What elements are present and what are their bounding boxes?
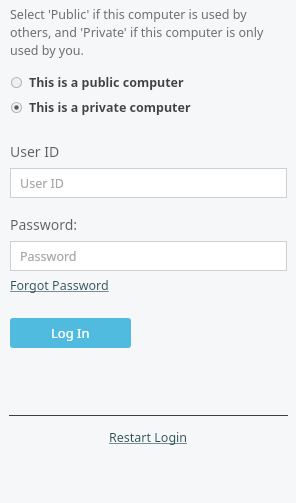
staticText: Select 'Public' if this computer is used… <box>10 6 288 59</box>
button[interactable]: Restart Login <box>109 429 188 446</box>
button[interactable]: User ID <box>10 168 287 198</box>
staticText: Password: <box>10 215 78 234</box>
staticText: Log In <box>51 324 90 342</box>
staticText: User ID <box>10 142 60 161</box>
staticText: User ID <box>20 175 64 192</box>
staticText: Restart Login <box>109 429 188 446</box>
button[interactable]: Password <box>10 241 287 271</box>
staticText: Forgot Password <box>10 277 109 294</box>
button[interactable]: Forgot Password <box>10 277 109 294</box>
staticText: This is a private computer <box>29 99 191 116</box>
button[interactable]: Log In <box>10 318 131 348</box>
button[interactable]: This is a private computer <box>0 96 296 118</box>
button[interactable]: This is a public computer <box>0 71 296 93</box>
staticText: Password <box>20 248 77 265</box>
staticText: This is a public computer <box>29 74 184 91</box>
